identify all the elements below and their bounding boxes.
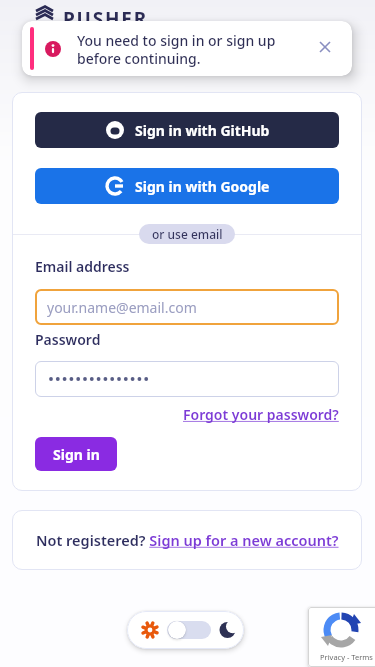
staticText: Password xyxy=(35,330,101,349)
staticText: Sign in with GitHub xyxy=(135,121,270,140)
staticText: Forgot your password? xyxy=(183,405,339,424)
staticText: PUSHER xyxy=(63,6,149,32)
staticText: Privacy - Terms xyxy=(320,652,373,662)
button[interactable]: You need to sign in or sign up before co… xyxy=(22,21,352,76)
button[interactable] xyxy=(318,40,332,54)
staticText: Sign in xyxy=(53,445,100,464)
button[interactable]: Forgot your password? xyxy=(183,405,339,424)
button[interactable]: Sign in with GitHub xyxy=(35,112,339,148)
staticText: You need to sign in or sign up before co… xyxy=(77,31,276,68)
button[interactable]: Not registered? Sign up for a new accoun… xyxy=(12,510,362,570)
button[interactable]: Sign in with Google xyxy=(35,168,339,204)
button[interactable]: Sign in xyxy=(35,437,117,471)
staticText: Not registered? Sign up for a new accoun… xyxy=(36,530,339,550)
staticText: Sign in with Google xyxy=(135,177,270,196)
staticText: or use email xyxy=(152,226,223,242)
staticText: your.name@email.com xyxy=(47,298,197,317)
staticText: Email address xyxy=(35,257,130,276)
button[interactable] xyxy=(127,611,244,649)
button[interactable]: your.name@email.com xyxy=(35,289,339,325)
button[interactable] xyxy=(35,361,339,397)
